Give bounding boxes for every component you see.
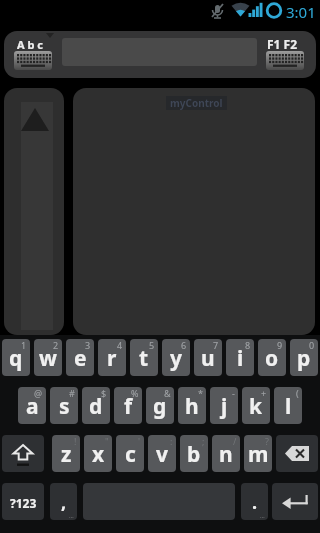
staticText: 7: [213, 339, 219, 351]
button[interactable]: t: [130, 339, 158, 376]
button[interactable]: k: [242, 387, 270, 424]
button[interactable]: v: [148, 435, 176, 472]
staticText: e: [74, 344, 87, 373]
staticText: #: [69, 387, 75, 399]
button[interactable]: [276, 435, 318, 472]
staticText: f: [124, 392, 133, 421]
staticText: g: [153, 392, 167, 421]
staticText: p: [297, 344, 311, 373]
button[interactable]: u: [194, 339, 222, 376]
staticText: u: [201, 344, 215, 373]
button[interactable]: d: [82, 387, 110, 424]
staticText: m: [248, 440, 269, 469]
staticText: 6: [181, 339, 187, 351]
button[interactable]: y: [162, 339, 190, 376]
staticText: b: [187, 440, 201, 469]
staticText: o: [265, 344, 279, 373]
button[interactable]: g: [146, 387, 174, 424]
staticText: A b c: [17, 37, 43, 52]
button[interactable]: A b c: [4, 31, 64, 78]
button[interactable]: p: [290, 339, 318, 376]
staticText: ?123: [10, 495, 37, 511]
button[interactable]: j: [210, 387, 238, 424]
button[interactable]: [4, 88, 64, 335]
staticText: ?: [265, 435, 269, 447]
button[interactable]: l: [274, 387, 302, 424]
staticText: 4: [117, 339, 123, 351]
staticText: 5: [149, 339, 155, 351]
staticText: i: [237, 344, 244, 373]
staticText: q: [9, 344, 23, 373]
button[interactable]: q: [2, 339, 30, 376]
staticText: w: [39, 344, 57, 373]
staticText: ,: [61, 490, 67, 515]
staticText: 9: [277, 339, 283, 351]
button[interactable]: f: [114, 387, 142, 424]
staticText: *: [198, 387, 203, 399]
staticText: r: [107, 344, 117, 373]
staticText: 2: [53, 339, 59, 351]
staticText: 1: [21, 339, 27, 351]
staticText: y: [170, 344, 182, 373]
button[interactable]: b: [180, 435, 208, 472]
staticText: $: [101, 387, 107, 399]
staticText: 3: [85, 339, 91, 351]
staticText: /: [233, 435, 237, 447]
staticText: ;: [202, 435, 205, 447]
button[interactable]: r: [98, 339, 126, 376]
button[interactable]: [272, 483, 318, 520]
staticText: h: [185, 392, 199, 421]
staticText: a: [26, 392, 39, 421]
button[interactable]: c: [116, 435, 144, 472]
button[interactable]: h: [178, 387, 206, 424]
staticText: x: [92, 440, 105, 469]
staticText: .: [252, 490, 258, 515]
staticText: n: [219, 440, 233, 469]
button[interactable]: s: [50, 387, 78, 424]
staticText: k: [249, 392, 263, 421]
staticText: :: [170, 435, 173, 447]
staticText: j: [221, 392, 228, 421]
staticText: s: [59, 392, 70, 421]
button[interactable]: o: [258, 339, 286, 376]
staticText: -: [232, 387, 235, 399]
staticText: …: [69, 512, 74, 520]
staticText: +: [261, 387, 267, 399]
staticText: …: [260, 512, 265, 520]
button[interactable]: i: [226, 339, 254, 376]
button[interactable]: z: [52, 435, 80, 472]
staticText: &: [164, 387, 171, 399]
staticText: %: [131, 387, 139, 399]
staticText: myControl: [170, 96, 223, 110]
staticText: l: [285, 392, 292, 421]
staticText: F1 F2: [267, 36, 298, 52]
staticText: (: [296, 387, 299, 399]
button[interactable]: n: [212, 435, 240, 472]
staticText: z: [61, 440, 72, 469]
button[interactable]: [2, 435, 44, 472]
button[interactable]: x: [84, 435, 112, 472]
button[interactable]: e: [66, 339, 94, 376]
button[interactable]: a: [18, 387, 46, 424]
staticText: ": [105, 435, 109, 447]
button[interactable]: ,: [50, 483, 77, 520]
button[interactable]: ?123: [2, 483, 44, 520]
staticText: v: [156, 440, 168, 469]
staticText: ': [138, 435, 141, 447]
staticText: 3:01: [286, 2, 316, 22]
staticText: !: [74, 435, 77, 447]
staticText: 0: [309, 339, 315, 351]
staticText: d: [89, 392, 103, 421]
button[interactable]: w: [34, 339, 62, 376]
button[interactable]: m: [244, 435, 272, 472]
staticText: t: [139, 344, 149, 373]
button[interactable]: .: [241, 483, 268, 520]
staticText: c: [125, 440, 136, 469]
staticText: @: [34, 387, 43, 399]
staticText: 8: [245, 339, 251, 351]
